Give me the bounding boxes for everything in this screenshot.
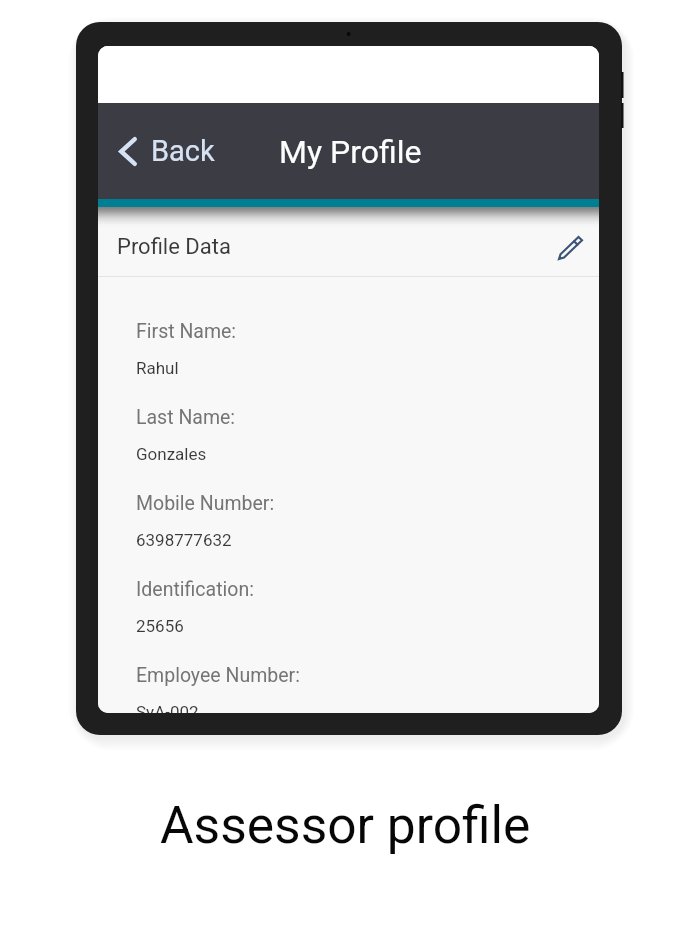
- staticText: SyA-002: [136, 702, 199, 713]
- staticText: Mobile Number:: [136, 492, 275, 515]
- staticText: 25656: [136, 616, 184, 636]
- staticText: Back: [151, 134, 215, 168]
- staticText: First Name:: [136, 320, 237, 343]
- button[interactable]: Back: [98, 124, 227, 178]
- staticText: Gonzales: [136, 444, 207, 464]
- staticText: Rahul: [136, 358, 179, 378]
- staticText: Employee Number:: [136, 664, 300, 687]
- staticText: Assessor profile: [160, 795, 531, 855]
- staticText: Profile Data: [117, 234, 231, 260]
- staticText: 6398777632: [136, 530, 232, 550]
- staticText: My Profile: [279, 133, 422, 171]
- staticText: Identification:: [136, 578, 254, 601]
- staticText: Last Name:: [136, 406, 236, 429]
- button[interactable]: Edit profile: [548, 226, 592, 270]
